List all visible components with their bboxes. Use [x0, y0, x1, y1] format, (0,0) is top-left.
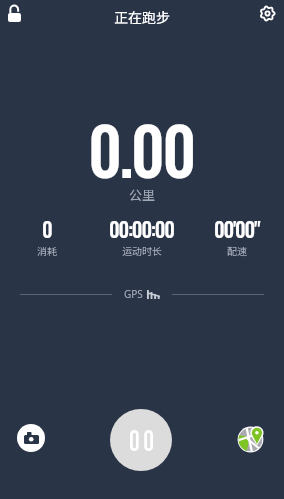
button[interactable]: Unlock: [0, 0, 30, 27]
staticText: 公里: [129, 185, 156, 204]
staticText: 00'00": [214, 214, 260, 244]
staticText: 运动时长: [122, 243, 162, 257]
button[interactable]: Camera: [17, 424, 45, 452]
staticText: 0: [42, 214, 52, 244]
button[interactable]: Pause: [110, 409, 172, 471]
staticText: 正在跑步: [114, 7, 170, 27]
button[interactable]: Settings: [254, 0, 284, 27]
staticText: GPS: [124, 287, 143, 301]
staticText: 配速: [227, 243, 247, 257]
staticText: 00:00:00: [109, 214, 174, 244]
staticText: 0.00: [88, 102, 194, 197]
staticText: 消耗: [37, 243, 57, 257]
button[interactable]: Map: [234, 421, 269, 456]
